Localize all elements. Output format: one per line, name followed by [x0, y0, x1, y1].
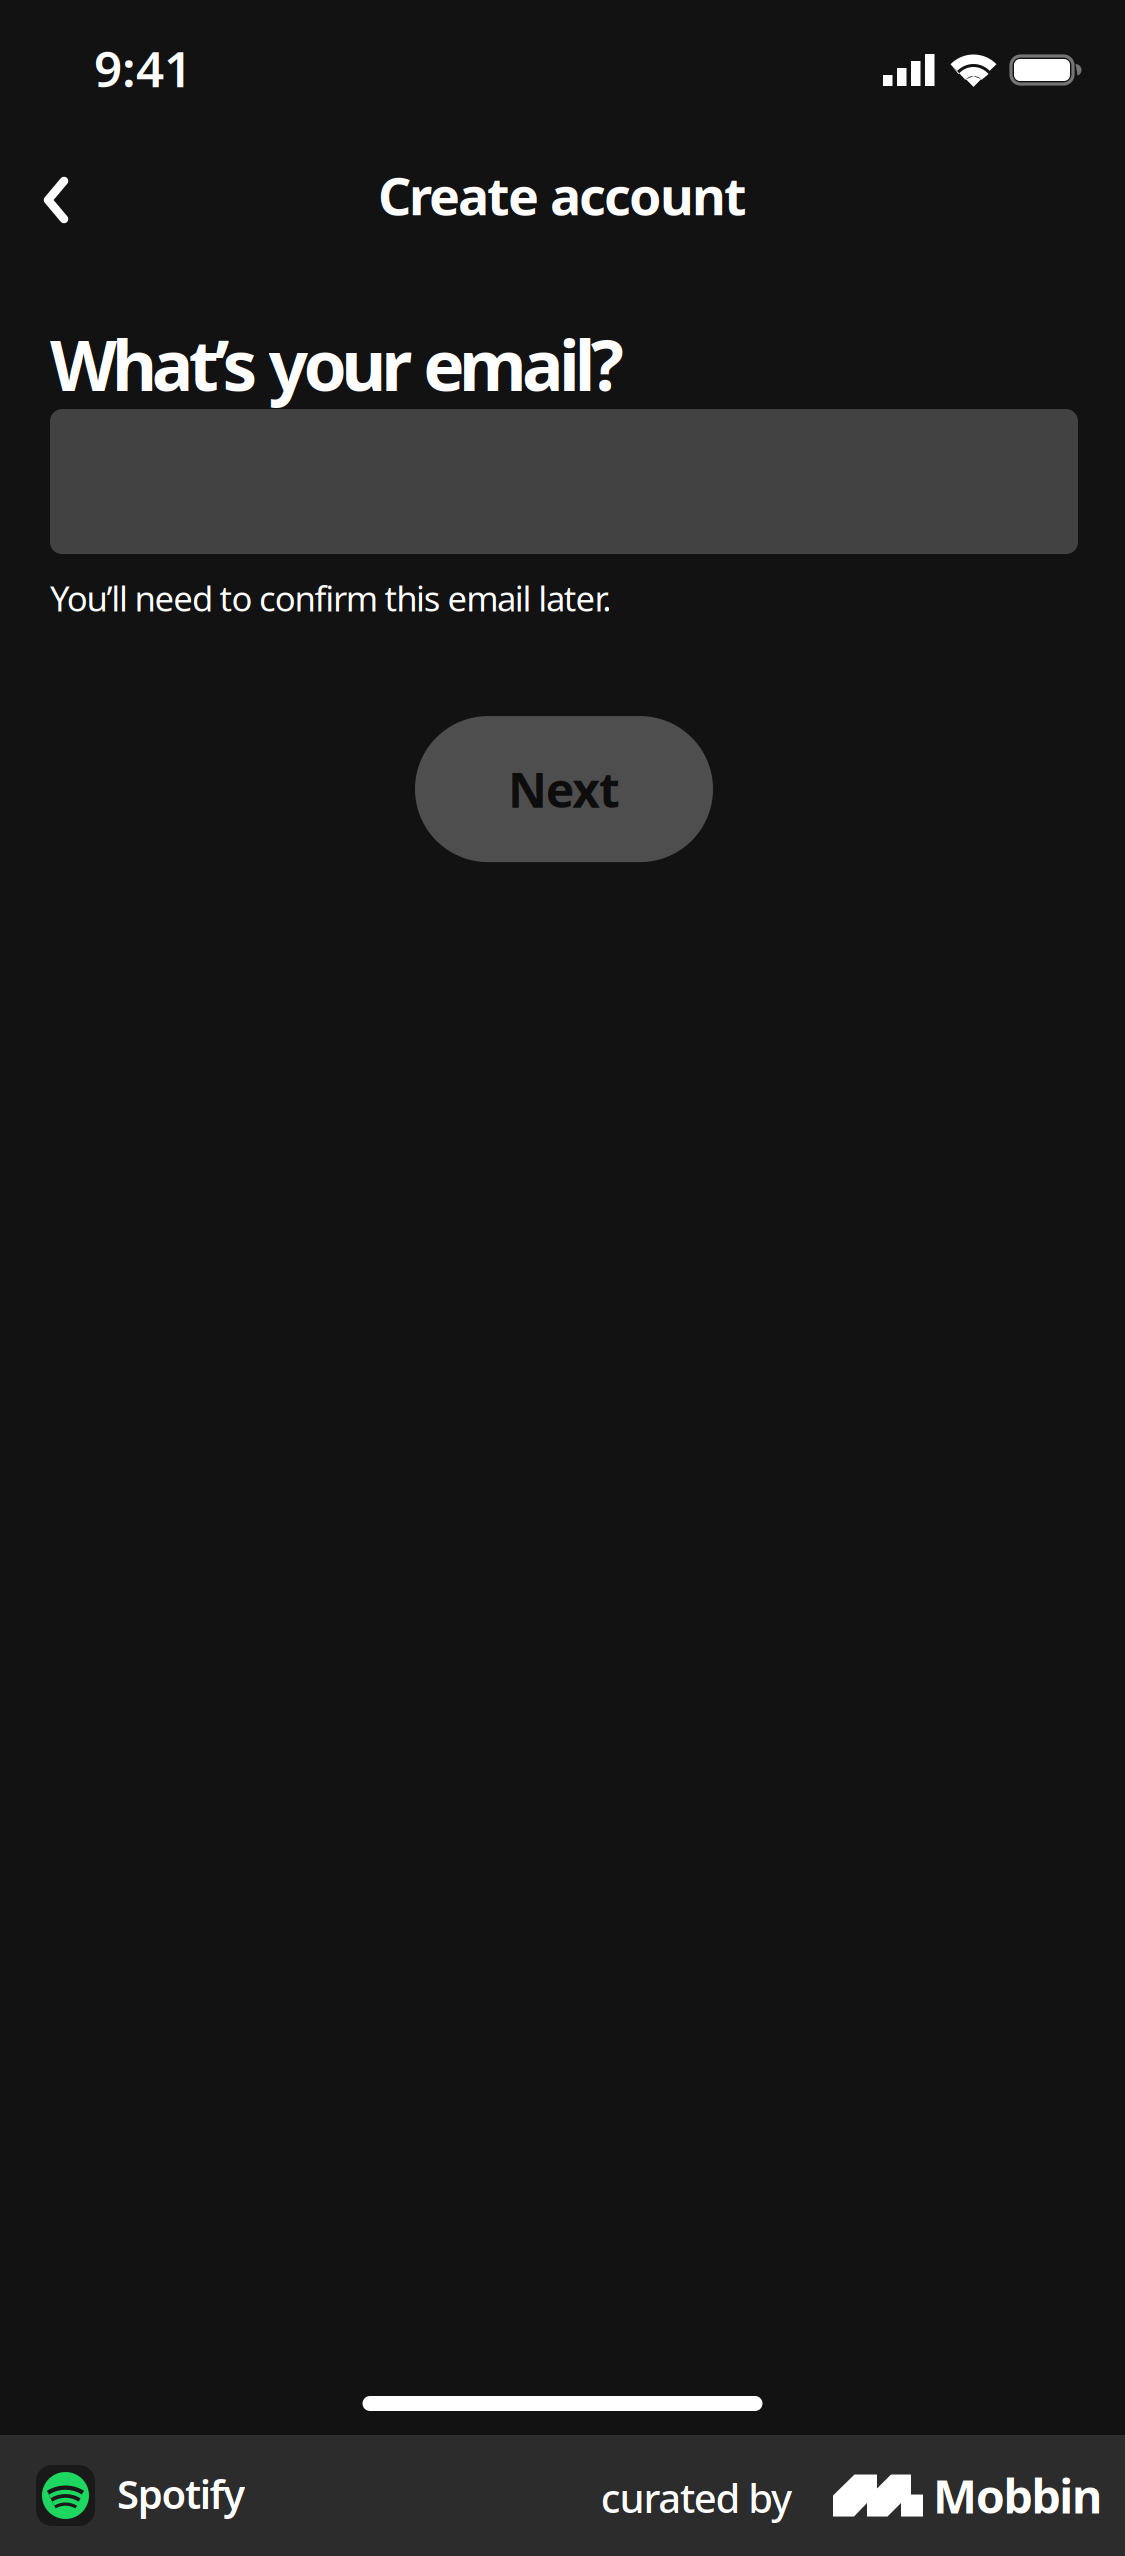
staticText: 9:41	[94, 35, 192, 101]
button[interactable]: Back	[0, 140, 112, 250]
staticText: account	[550, 160, 747, 230]
button[interactable]: Next	[415, 716, 713, 862]
staticText: curated by	[601, 2471, 792, 2524]
staticText: email?	[423, 318, 624, 410]
staticText: your	[268, 318, 412, 410]
staticText: Next	[508, 757, 620, 821]
staticText: Spotify	[117, 2467, 245, 2520]
staticText: What’s	[50, 318, 257, 410]
staticText: You’ll need to confirm this email later.	[50, 575, 611, 621]
staticText: Create	[378, 160, 539, 230]
staticText: Mobbin	[933, 2464, 1102, 2526]
